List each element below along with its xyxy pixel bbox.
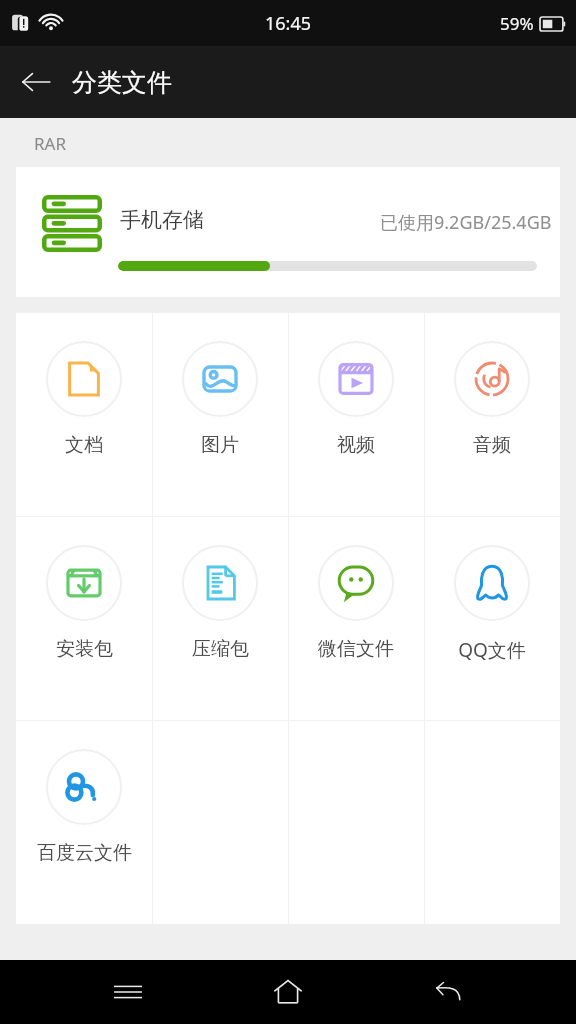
button[interactable]: Home	[256, 960, 320, 1024]
staticText: 百度云文件	[37, 841, 132, 865]
staticText: 已使用9.2GB/25.4GB	[380, 210, 552, 235]
staticText: 文档	[65, 433, 103, 457]
staticText: 音频	[473, 433, 511, 457]
staticText: 微信文件	[318, 637, 394, 661]
button[interactable]: 百度云文件	[16, 721, 152, 924]
staticText: QQ文件	[458, 637, 526, 663]
staticText: 安装包	[56, 637, 113, 661]
button[interactable]: 图片	[152, 313, 288, 516]
staticText: 图片	[201, 433, 239, 457]
button[interactable]: 微信文件	[288, 517, 424, 720]
button[interactable]: 手机存储	[16, 167, 560, 297]
button[interactable]: Back	[8, 54, 64, 110]
button[interactable]: 文档	[16, 313, 152, 516]
staticText: 分类文件	[72, 67, 172, 98]
button[interactable]: Back	[416, 960, 480, 1024]
button[interactable]: Menu	[96, 960, 160, 1024]
button[interactable]: 安装包	[16, 517, 152, 720]
button[interactable]: QQ文件	[424, 517, 560, 720]
staticText: 压缩包	[192, 637, 249, 661]
button[interactable]: 视频	[288, 313, 424, 516]
staticText: 手机存储	[120, 207, 204, 233]
button[interactable]: 压缩包	[152, 517, 288, 720]
staticText: 视频	[337, 433, 375, 457]
staticText: RAR	[34, 132, 67, 155]
button[interactable]: 音频	[424, 313, 560, 516]
staticText: 16:45	[265, 11, 312, 36]
staticText: 59%	[500, 12, 534, 35]
